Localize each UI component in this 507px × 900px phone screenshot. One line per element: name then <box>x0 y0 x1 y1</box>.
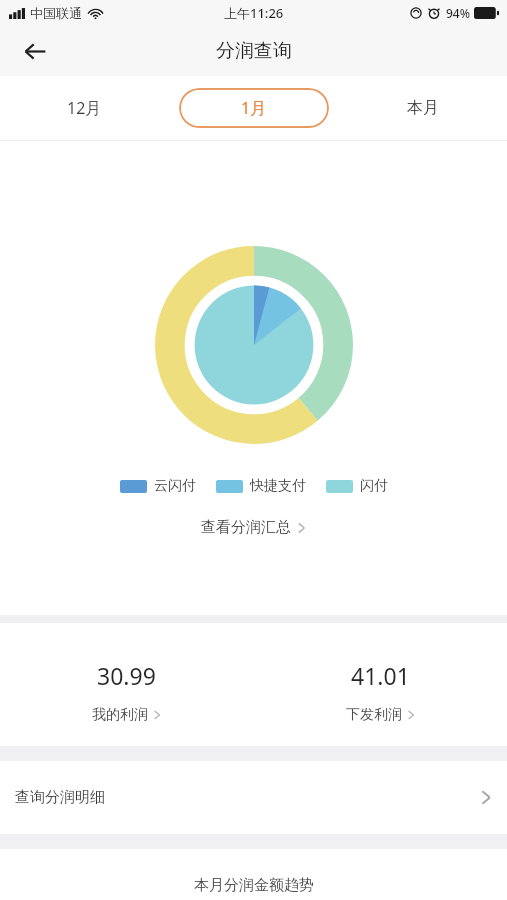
staticText: 查看分润汇总 <box>201 518 291 537</box>
staticText: 94% <box>446 5 470 21</box>
staticText: 中国联通 <box>30 5 82 21</box>
button[interactable]: 12月 <box>0 76 169 140</box>
staticText: 41.01 <box>351 660 410 691</box>
button[interactable]: 30.99 <box>0 623 253 746</box>
staticText: 1月 <box>241 97 267 119</box>
staticText: 上午11:26 <box>224 4 284 22</box>
staticText: 本月分润金额趋势 <box>194 876 314 895</box>
staticText: 分润查询 <box>216 39 292 63</box>
staticText: 查询分润明细 <box>15 788 105 807</box>
button[interactable]: 1月 <box>179 88 329 128</box>
button[interactable]: 41.01 <box>253 623 507 746</box>
staticText: 云闪付 <box>154 477 196 495</box>
button[interactable]: 查询分润明细 <box>0 761 507 834</box>
staticText: 闪付 <box>360 477 388 495</box>
staticText: 30.99 <box>97 660 156 691</box>
staticText: 我的利润 <box>92 706 148 724</box>
staticText: 12月 <box>67 97 102 119</box>
button[interactable]: Back <box>12 28 58 74</box>
button[interactable]: 查看分润汇总 <box>187 511 320 544</box>
staticText: 快捷支付 <box>250 477 306 495</box>
staticText: 下发利润 <box>346 706 402 724</box>
button[interactable]: 本月 <box>338 76 507 140</box>
staticText: 本月 <box>407 98 439 118</box>
